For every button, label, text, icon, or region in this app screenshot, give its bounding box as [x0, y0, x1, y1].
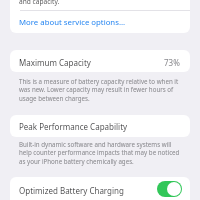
button[interactable]: Optimized Battery Charging [157, 181, 182, 197]
staticText: and capacity. [19, 0, 60, 6]
staticText: Maximum Capacity [19, 57, 91, 68]
button[interactable]: Maximum Capacity [10, 50, 190, 72]
button[interactable]: More about service options... [10, 11, 190, 33]
staticText: Optimized Battery Charging [19, 185, 124, 196]
staticText: Built-in dynamic software and hardware s… [19, 140, 181, 166]
staticText: More about service options... [19, 17, 126, 28]
button[interactable]: Peak Performance Capability [10, 115, 190, 137]
staticText: Peak Performance Capability [19, 121, 128, 132]
staticText: This is a measure of battery capacity re… [19, 77, 181, 103]
staticText: 73% [164, 57, 180, 68]
button[interactable]: Optimized Battery Charging [10, 177, 190, 200]
